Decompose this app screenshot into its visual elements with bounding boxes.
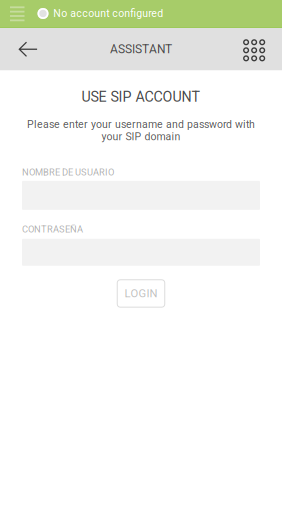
button[interactable]: Menu bbox=[0, 0, 37, 27]
button[interactable]: Dialpad bbox=[243, 28, 282, 71]
staticText: LOGIN bbox=[124, 287, 157, 300]
staticText: No account configured bbox=[53, 7, 163, 20]
staticText: CONTRASEÑA bbox=[22, 224, 83, 235]
staticText: Please enter your username and password … bbox=[27, 118, 255, 130]
staticText: your SIP domain bbox=[101, 131, 180, 143]
staticText: NOMBRE DE USUARIO bbox=[22, 167, 114, 178]
button[interactable]: LOGIN bbox=[117, 280, 165, 307]
staticText: USE SIP ACCOUNT bbox=[81, 88, 200, 105]
button[interactable]: No account configured bbox=[37, 0, 163, 27]
button[interactable]: Back bbox=[0, 28, 50, 71]
staticText: ASSISTANT bbox=[110, 42, 172, 56]
